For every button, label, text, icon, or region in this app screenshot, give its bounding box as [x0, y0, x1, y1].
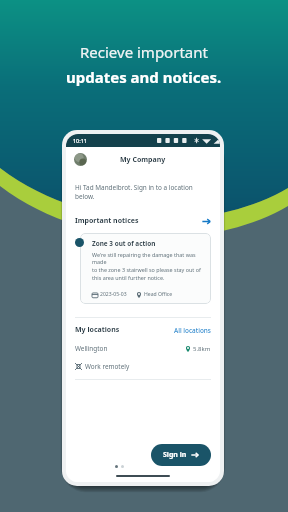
button[interactable]: Zone 3 out of action — [80, 233, 211, 304]
staticText: updates and notices. — [66, 67, 222, 87]
staticText: 10:11 — [73, 137, 87, 144]
staticText: Work remotely — [85, 362, 130, 371]
staticText: My Company — [120, 155, 166, 165]
staticText: Hi Tad Mandelbrot. Sign in to a location… — [75, 183, 193, 201]
button[interactable]: Important notices — [75, 216, 211, 226]
staticText: 5.8km — [193, 345, 211, 353]
button[interactable]: Sign in — [151, 444, 211, 466]
staticText: Head Office — [144, 291, 173, 298]
staticText: 2023-05-03 — [100, 291, 127, 298]
staticText: Recieve important — [80, 42, 208, 62]
other: See all notices — [202, 217, 211, 226]
staticText: All locations — [174, 326, 211, 335]
staticText: Important notices — [75, 216, 139, 226]
button[interactable]: Profile — [74, 153, 87, 166]
staticText: Sign in — [163, 450, 187, 460]
staticText: Zone 3 out of action — [92, 239, 156, 248]
button[interactable]: Wellington — [75, 344, 211, 353]
staticText: We're still repairing the damage that wa… — [92, 251, 204, 282]
staticText: Wellington — [75, 344, 108, 353]
button[interactable]: Work remotely — [75, 362, 211, 371]
button[interactable]: My locations — [75, 325, 211, 335]
staticText: My locations — [75, 325, 120, 335]
